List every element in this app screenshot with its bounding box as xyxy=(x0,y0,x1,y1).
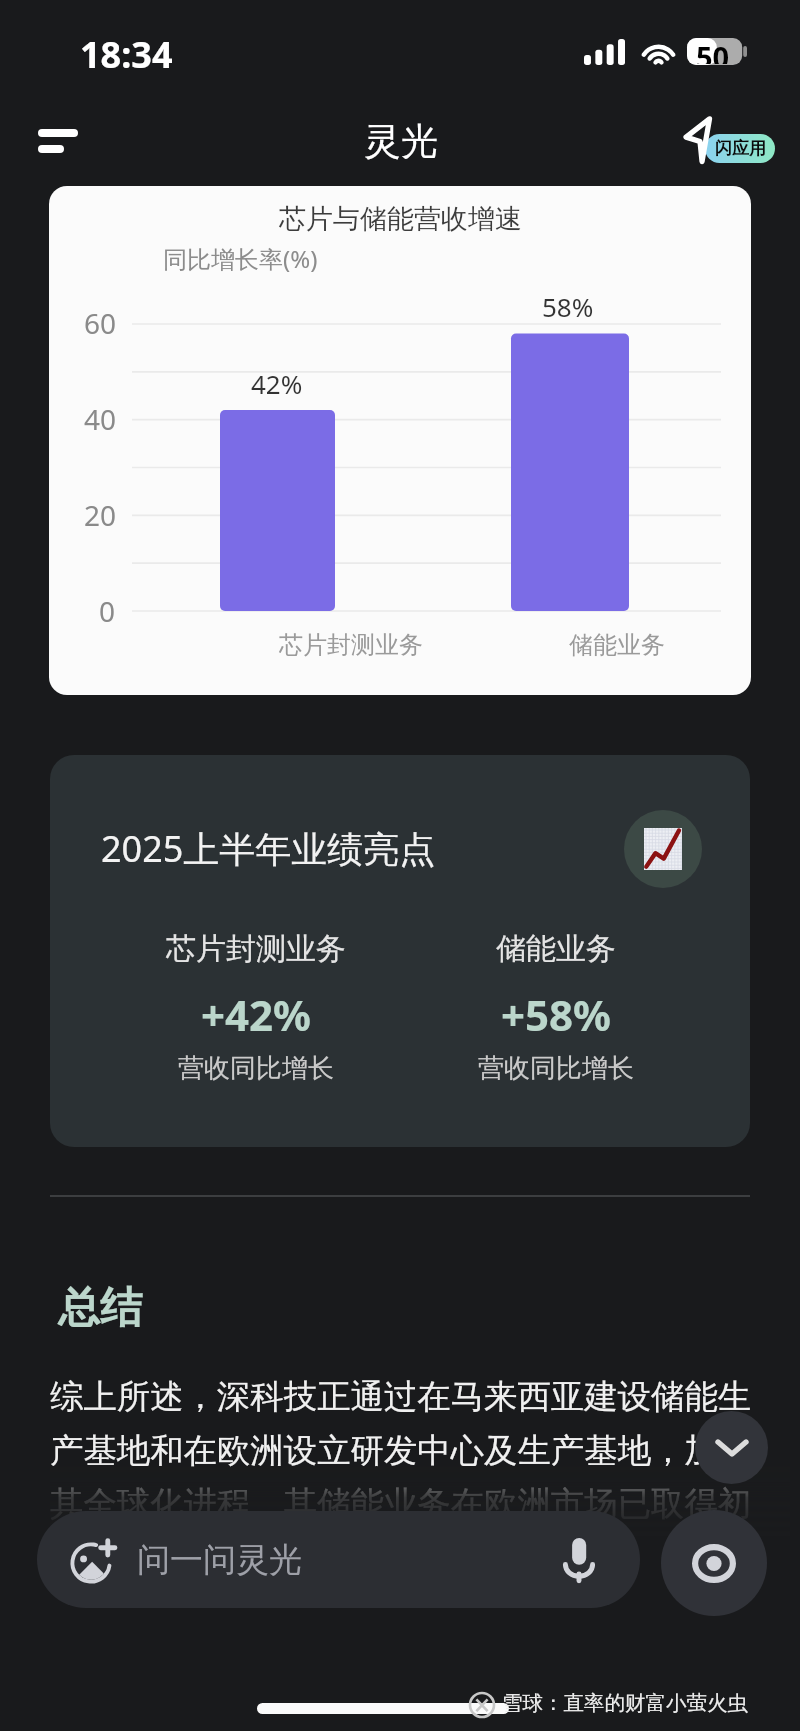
staticText: 营收同比增长 xyxy=(178,1052,334,1085)
staticText: 灵光 xyxy=(364,118,438,165)
staticText: 60 xyxy=(84,304,117,342)
staticText: 20 xyxy=(84,496,117,534)
staticText: 42% xyxy=(251,366,303,401)
button[interactable]: Preview xyxy=(661,1510,767,1616)
staticText: 储能业务 xyxy=(569,630,665,660)
button[interactable]: 问一问灵光 xyxy=(37,1511,640,1608)
staticText: 总结 xyxy=(58,1282,142,1335)
staticText: 2025上半年业绩亮点 xyxy=(101,824,436,873)
staticText: 40 xyxy=(84,400,117,438)
staticText: 0 xyxy=(99,592,116,630)
staticText: 芯片与储能营收增速 xyxy=(279,202,522,236)
staticText: 18:34 xyxy=(80,30,173,79)
staticText: +42% xyxy=(201,986,311,1043)
staticText: +58% xyxy=(501,986,611,1043)
staticText: 芯片封测业务 xyxy=(279,630,423,660)
button[interactable]: 芯片与储能营收增速 xyxy=(49,186,751,695)
staticText: 同比增长率(%) xyxy=(163,242,318,275)
staticText: 营收同比增长 xyxy=(478,1052,634,1085)
staticText: 50 xyxy=(696,37,730,64)
staticText: 综上所述，深科技正通过在马来西亚建设储能生 产基地和在欧洲设立研发中心及生产基地… xyxy=(50,1376,752,1524)
button[interactable]: Collapse xyxy=(695,1411,768,1484)
button[interactable]: 2025上半年业绩亮点 xyxy=(50,755,750,1147)
staticText: 芯片封测业务 xyxy=(166,930,346,968)
staticText: 问一问灵光 xyxy=(137,1539,302,1581)
button[interactable]: Menu xyxy=(28,111,88,171)
staticText: 闪应用 xyxy=(715,138,766,159)
staticText: 雪球：直率的财富小萤火虫 xyxy=(502,1690,748,1716)
button[interactable]: 闪应用 xyxy=(684,112,780,168)
staticText: 储能业务 xyxy=(496,930,616,968)
staticText: 58% xyxy=(542,289,594,324)
